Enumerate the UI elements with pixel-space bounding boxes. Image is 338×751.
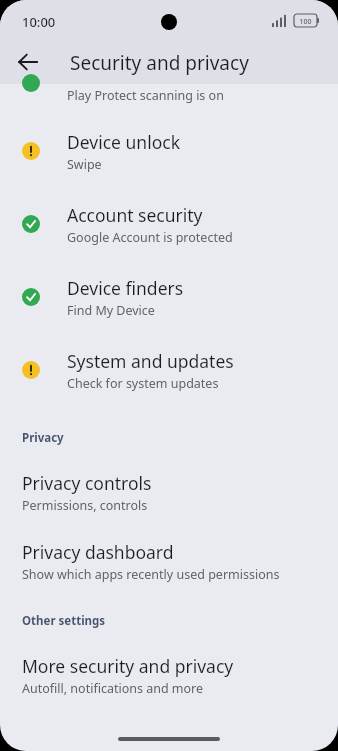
staticText: 10:00 (22, 13, 56, 31)
button[interactable]: More security and privacy (0, 647, 338, 703)
staticText: Account security (67, 203, 203, 227)
staticText: Show which apps recently used permission… (22, 566, 280, 583)
staticText: Privacy (22, 430, 64, 446)
staticText: Autofill, notifications and more (22, 680, 204, 697)
staticText: Find My Device (67, 302, 155, 319)
staticText: Permissions, controls (22, 497, 148, 514)
staticText: Swipe (67, 156, 102, 173)
button[interactable]: Back (8, 42, 48, 82)
staticText: System and updates (67, 349, 234, 373)
staticText: More security and privacy (22, 654, 234, 678)
staticText: Google Account is protected (67, 229, 233, 246)
staticText: Privacy dashboard (22, 540, 174, 564)
button[interactable]: Device finders (0, 266, 338, 328)
staticText: Play Protect scanning is on (67, 87, 224, 104)
staticText: Device unlock (67, 130, 180, 154)
staticText: Check for system updates (67, 375, 219, 392)
button[interactable]: Privacy controls (0, 464, 338, 520)
button[interactable]: Device unlock (0, 120, 338, 182)
staticText: Privacy controls (22, 471, 152, 495)
staticText: Device finders (67, 276, 184, 300)
button[interactable]: Account security (0, 193, 338, 255)
staticText: Other settings (22, 613, 106, 629)
button[interactable]: System and updates (0, 339, 338, 401)
staticText: Security and privacy (70, 50, 249, 76)
button[interactable]: Privacy dashboard (0, 533, 338, 589)
staticText: 100 (294, 17, 317, 27)
